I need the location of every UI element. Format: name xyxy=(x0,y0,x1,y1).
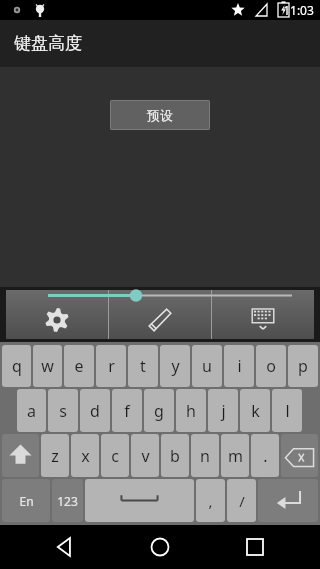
button[interactable]: 预设 xyxy=(110,100,210,130)
staticText: q xyxy=(12,355,22,377)
staticText: a xyxy=(27,400,36,422)
staticText: b xyxy=(170,445,180,467)
button[interactable]: k xyxy=(240,389,270,432)
staticText: f xyxy=(124,400,130,422)
button[interactable]: t xyxy=(128,345,158,387)
button[interactable]: Space xyxy=(85,479,194,522)
staticText: , xyxy=(208,491,213,511)
button[interactable]: Edit xyxy=(109,290,211,339)
staticText: m xyxy=(228,445,243,467)
staticText: o xyxy=(266,355,276,377)
staticText: s xyxy=(59,400,67,422)
button[interactable]: . xyxy=(251,434,279,477)
button[interactable]: Shift xyxy=(2,434,39,477)
button[interactable]: En xyxy=(2,479,50,522)
button[interactable]: x xyxy=(71,434,99,477)
staticText: i xyxy=(237,355,242,377)
staticText: h xyxy=(186,400,196,422)
button[interactable]: f xyxy=(112,389,142,432)
staticText: / xyxy=(239,491,245,511)
staticText: r xyxy=(108,355,115,377)
button[interactable]: q xyxy=(2,345,31,387)
button[interactable]: r xyxy=(96,345,126,387)
staticText: 预设 xyxy=(147,107,173,123)
staticText: x xyxy=(81,445,90,467)
button[interactable]: j xyxy=(208,389,238,432)
button[interactable]: y xyxy=(160,345,190,387)
button[interactable]: Enter xyxy=(258,479,318,522)
button[interactable]: w xyxy=(33,345,62,387)
button[interactable]: s xyxy=(48,389,78,432)
button[interactable]: Settings xyxy=(6,290,108,339)
staticText: p xyxy=(298,355,308,377)
button[interactable]: 123 xyxy=(52,479,83,522)
staticText: y xyxy=(171,355,180,377)
button[interactable]: Hide keyboard xyxy=(212,290,314,339)
button[interactable]: n xyxy=(191,434,219,477)
button[interactable]: p xyxy=(288,345,318,387)
button[interactable]: Back xyxy=(35,525,95,569)
staticText: n xyxy=(200,445,210,467)
button[interactable]: , xyxy=(196,479,225,522)
button[interactable]: l xyxy=(272,389,302,432)
staticText: l xyxy=(285,400,290,422)
staticText: v xyxy=(141,445,150,467)
staticText: u xyxy=(202,355,212,377)
staticText: k xyxy=(251,400,260,422)
staticText: 键盘高度 xyxy=(14,33,82,54)
staticText: j xyxy=(221,400,226,422)
button[interactable]: v xyxy=(131,434,159,477)
button[interactable]: b xyxy=(161,434,189,477)
button[interactable]: e xyxy=(64,345,94,387)
staticText: c xyxy=(111,445,119,467)
button[interactable]: Delete xyxy=(281,434,318,477)
staticText: . xyxy=(263,445,268,467)
button[interactable]: / xyxy=(227,479,256,522)
button[interactable]: g xyxy=(144,389,174,432)
staticText: e xyxy=(74,355,84,377)
button[interactable]: c xyxy=(101,434,129,477)
staticText: z xyxy=(51,445,59,467)
button[interactable]: Recents xyxy=(225,525,285,569)
button[interactable]: h xyxy=(176,389,206,432)
staticText: 123 xyxy=(57,493,78,509)
staticText: En xyxy=(19,493,34,509)
staticText: 11:03 xyxy=(283,2,314,18)
button[interactable]: d xyxy=(80,389,110,432)
button[interactable]: u xyxy=(192,345,222,387)
staticText: g xyxy=(154,400,164,422)
button[interactable]: z xyxy=(41,434,69,477)
staticText: w xyxy=(41,355,54,377)
button[interactable]: i xyxy=(224,345,254,387)
button[interactable]: a xyxy=(17,389,46,432)
button[interactable]: m xyxy=(221,434,249,477)
button[interactable]: o xyxy=(256,345,286,387)
button[interactable]: Home xyxy=(130,525,190,569)
staticText: d xyxy=(90,400,100,422)
staticText: t xyxy=(140,355,146,377)
